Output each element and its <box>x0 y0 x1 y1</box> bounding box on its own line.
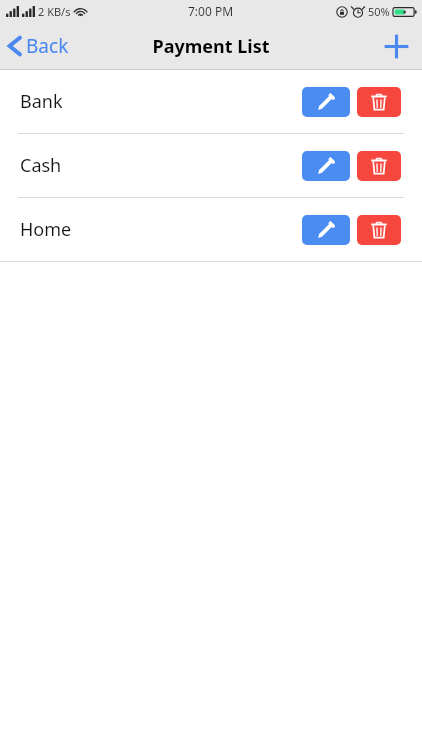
button[interactable]: Cash <box>0 134 422 197</box>
button[interactable]: Edit <box>302 151 350 181</box>
staticText: 50% <box>368 4 390 19</box>
button[interactable]: Edit <box>302 215 350 245</box>
staticText: Home <box>20 217 72 242</box>
staticText: 2 KB/s <box>38 4 71 19</box>
staticText: Payment List <box>152 34 270 59</box>
button[interactable]: Add payment <box>371 27 422 66</box>
button[interactable]: Delete <box>357 215 401 245</box>
staticText: Bank <box>20 89 63 114</box>
staticText: Cash <box>20 153 62 178</box>
button[interactable]: Edit <box>302 87 350 117</box>
button[interactable]: Back <box>0 27 79 65</box>
button[interactable]: Bank <box>0 70 422 133</box>
button[interactable]: Home <box>0 198 422 261</box>
button[interactable]: Delete <box>357 87 401 117</box>
staticText: 7:00 PM <box>188 3 234 19</box>
staticText: Back <box>26 33 69 59</box>
button[interactable]: Delete <box>357 151 401 181</box>
